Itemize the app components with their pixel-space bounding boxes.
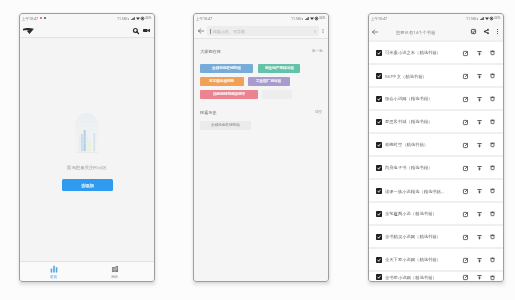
staticText: 567中文（精选书籍） — [385, 73, 458, 79]
button[interactable]: 搜索小区、写字楼 — [210, 26, 316, 36]
staticText: 全书爱小说网（精选书籍） — [385, 275, 458, 280]
button[interactable]: 尚舟电子书（精选书籍） — [376, 157, 499, 178]
button[interactable]: 工业园厂房出租 — [248, 77, 290, 86]
button[interactable]: 清空 — [314, 109, 324, 116]
staticText: 商业地产整体出租 — [265, 66, 294, 71]
button[interactable]: Download — [472, 207, 486, 221]
button[interactable]: 全天下爱小说网（精选书籍） — [376, 249, 499, 270]
button[interactable]: Download — [472, 184, 486, 198]
button[interactable]: 爱思客书城（精选书籍） — [376, 111, 499, 132]
button[interactable]: 全城特色旺铺招租 — [200, 121, 251, 130]
staticText: 微会小说网（精选书籍） — [385, 96, 458, 101]
button[interactable]: Open — [458, 115, 472, 129]
button[interactable]: Open — [458, 46, 472, 60]
button[interactable]: Download — [472, 69, 486, 83]
button[interactable]: More options — [493, 27, 502, 36]
button[interactable]: 品牌商铺招商加盟中 — [200, 90, 258, 99]
button[interactable]: Open — [458, 207, 472, 221]
button[interactable]: 可米康小说之末（精选书籍） — [376, 42, 499, 63]
button[interactable]: Back — [195, 25, 206, 36]
button[interactable]: Download — [472, 92, 486, 106]
staticText: 您要已有14个个书籍 — [396, 29, 436, 35]
button[interactable]: Open — [458, 230, 472, 244]
button[interactable]: 去添加 — [62, 179, 113, 191]
staticText: 可米康小说之末（精选书籍） — [385, 50, 458, 55]
staticText: 爱思客书城（精选书籍） — [385, 119, 458, 124]
button[interactable]: Delete — [486, 46, 499, 59]
button[interactable]: Delete — [486, 69, 499, 82]
staticText: 11.5K/s — [117, 16, 130, 21]
button[interactable]: Delete — [486, 115, 499, 128]
button[interactable]: 我的 — [84, 262, 145, 282]
staticText: 34% — [145, 16, 152, 20]
button[interactable]: Open — [458, 92, 472, 106]
button[interactable]: 写字楼出租招商 — [200, 77, 244, 86]
button[interactable]: 临晚时空（精选书籍） — [376, 134, 499, 155]
button[interactable]: More — [319, 27, 327, 35]
button[interactable]: Delete — [486, 253, 499, 266]
staticText: 工业园厂房出租 — [256, 79, 282, 84]
button[interactable]: Open — [458, 184, 472, 198]
staticText: 全城特色旺铺招租 — [211, 123, 240, 128]
button[interactable]: 全书精灵小说网（精选书籍） — [376, 226, 499, 247]
staticText: 临晚时空（精选书籍） — [385, 142, 458, 147]
staticText: 上午10:47 — [22, 16, 38, 21]
button[interactable]: 全书爱小说网（精选书籍） — [376, 272, 499, 282]
button[interactable]: Delete — [486, 161, 499, 174]
button[interactable]: 商业地产整体出租 — [258, 64, 300, 73]
staticText: 11.5K/s — [291, 16, 304, 21]
button[interactable]: Delete — [486, 92, 499, 105]
button[interactable]: Download — [472, 272, 486, 282]
staticText: 首页 — [50, 275, 57, 279]
staticText: 换一换 — [312, 49, 323, 54]
button[interactable]: Download — [472, 230, 486, 244]
staticText: 品牌商铺招商加盟中 — [213, 92, 246, 97]
staticText: 搜索历史 — [200, 110, 217, 115]
button[interactable]: Share — [480, 25, 493, 38]
button[interactable]: Delete — [486, 207, 499, 220]
staticText: 全笔趣阁小说（精选书籍） — [385, 211, 458, 216]
button[interactable]: 微会小说网（精选书籍） — [376, 88, 499, 109]
button[interactable]: Delete — [486, 230, 499, 243]
button[interactable]: Back — [370, 27, 380, 37]
button[interactable]: Download — [472, 115, 486, 129]
button[interactable]: Open — [458, 69, 472, 83]
button[interactable]: Download — [472, 161, 486, 175]
staticText: 全天下爱小说网（精选书籍） — [385, 257, 458, 262]
staticText: 搜索小区、写字楼 — [213, 29, 245, 34]
staticText: 尚舟电子书（精选书籍） — [385, 165, 458, 170]
button[interactable]: Delete — [486, 272, 499, 282]
staticText: 上午10:47 — [196, 16, 212, 21]
staticText: 暂无您最关注的小区 — [67, 165, 107, 171]
button[interactable]: 全城特色旺铺招租 — [200, 64, 253, 73]
staticText: 读课一族小说精选（精选书籍… — [385, 188, 458, 194]
button[interactable]: 567中文（精选书籍） — [376, 65, 499, 86]
button[interactable]: Video — [141, 25, 152, 36]
button[interactable]: Open — [458, 138, 472, 152]
staticText: 去添加 — [81, 183, 94, 188]
button[interactable]: Open — [458, 272, 472, 282]
button[interactable]: 首页 — [23, 262, 84, 282]
staticText: 大家都在搜 — [200, 49, 221, 54]
staticText: 11.5K/s — [466, 16, 479, 21]
staticText: 上午10:47 — [371, 16, 387, 21]
staticText: 34% — [494, 16, 501, 20]
button[interactable]: Download — [472, 253, 486, 267]
button[interactable]: Open — [458, 253, 472, 267]
button[interactable]: 读课一族小说精选（精选书籍… — [376, 180, 499, 201]
button[interactable]: Delete — [486, 184, 499, 197]
button[interactable]: Download — [472, 138, 486, 152]
staticText: 我的 — [111, 275, 118, 279]
button[interactable]: Download — [472, 46, 486, 60]
staticText: 写字楼出租招商 — [209, 79, 235, 84]
button[interactable]: Select all — [467, 25, 480, 38]
button[interactable]: 全笔趣阁小说（精选书籍） — [376, 203, 499, 224]
button[interactable]: Search — [130, 25, 141, 36]
button[interactable]: Open — [458, 161, 472, 175]
staticText: 全城特色旺铺招租 — [212, 66, 241, 71]
staticText: 全书精灵小说网（精选书籍） — [385, 234, 458, 239]
staticText: 清空 — [315, 110, 323, 115]
button[interactable]: 换一换 — [311, 48, 324, 55]
button[interactable]: Delete — [486, 138, 499, 151]
